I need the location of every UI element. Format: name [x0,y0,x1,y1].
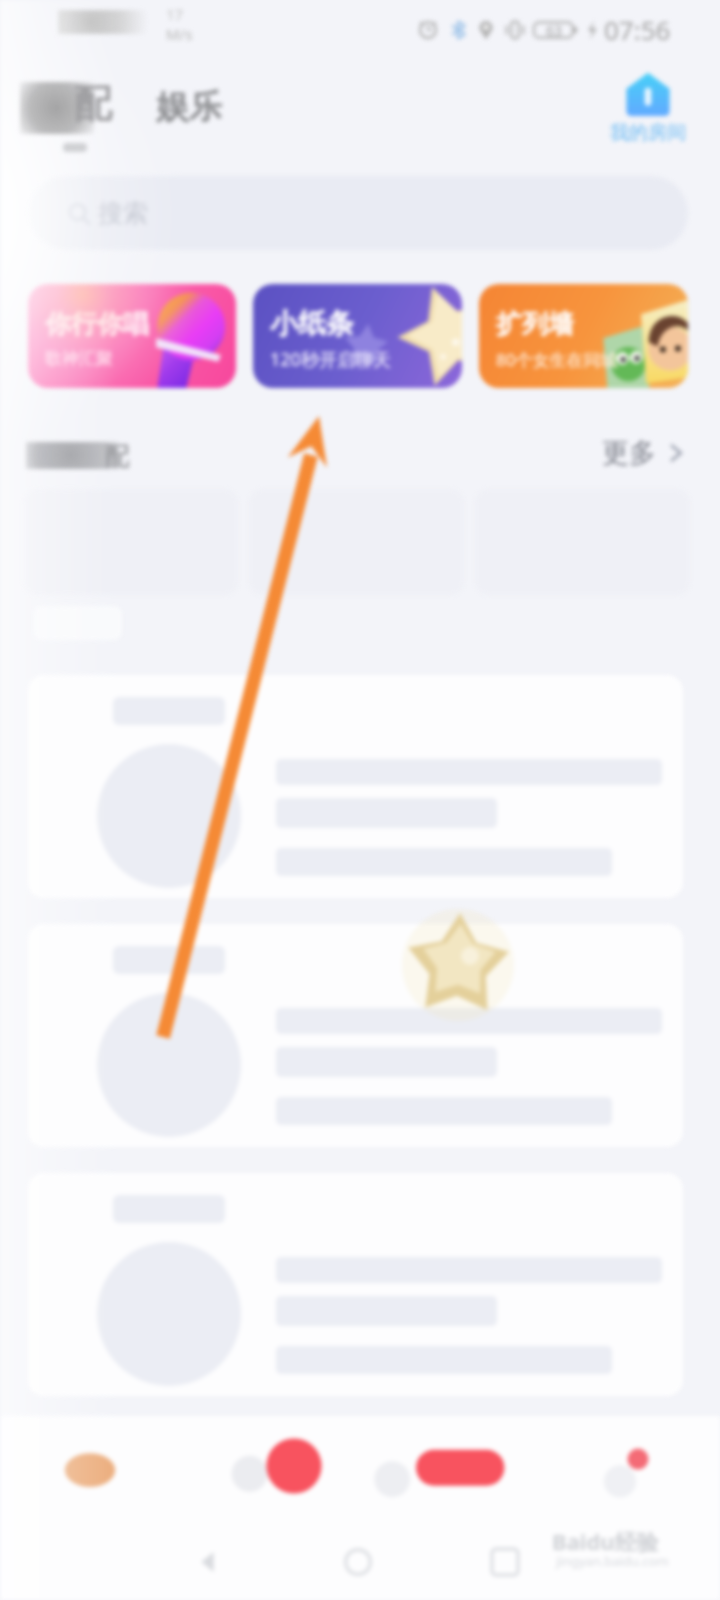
staticText: 歌神汇聚 [45,348,113,369]
button[interactable] [28,675,683,898]
button[interactable]: 娱乐 [156,86,222,128]
staticText: Baidu经验 [552,1526,659,1556]
button[interactable]: Home [340,1544,376,1580]
staticText: M/s [166,24,193,44]
staticText: 我的房间 [610,121,686,145]
button[interactable]: Back [190,1544,226,1580]
staticText: 17 [166,4,184,24]
button[interactable] [249,489,464,595]
button[interactable]: 扩列墙 [479,284,688,388]
button[interactable]: 搜索 [28,176,688,250]
staticText: 搜索 [98,198,148,229]
button[interactable]: Recents [487,1544,523,1580]
button[interactable]: 你行你唱 [28,284,236,388]
button[interactable]: 随机匹配 [26,442,130,470]
button[interactable]: 匹配 [20,78,134,134]
staticText: 更多 [602,436,656,470]
button[interactable]: 消息 [180,1416,360,1522]
staticText: 配 [74,80,112,128]
staticText: jingyan.baidu.com [556,1552,669,1570]
button[interactable]: 我的 [540,1416,720,1522]
button[interactable]: 动态 [360,1416,540,1522]
staticText: 小纸条 [270,306,354,341]
button[interactable]: 更多 [602,436,686,470]
button[interactable] [28,924,683,1147]
staticText: 07:56 [604,12,671,47]
staticText: 扩列墙 [496,308,574,341]
staticText: 娱乐 [156,86,222,128]
staticText: 配 [104,441,129,469]
button[interactable]: 匹配 [0,1416,180,1522]
staticText: 120秒开启聊天 [270,347,391,372]
staticText: 63 [546,21,563,40]
button[interactable]: 小纸条 [253,284,462,388]
staticText: 80个女生在同城 [496,348,618,371]
button[interactable] [28,1173,683,1396]
button[interactable]: 我的房间 [599,70,696,145]
staticText: 你行你唱 [45,308,149,341]
